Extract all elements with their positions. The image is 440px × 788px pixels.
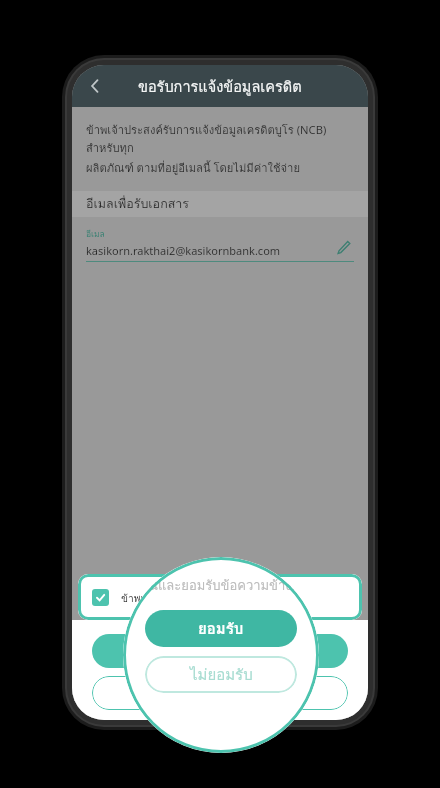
button[interactable]: Edit email xyxy=(332,236,354,258)
staticText: ไม่ยอมรับ xyxy=(194,683,247,703)
staticText: kasikorn.rakthai2@kasikornbank.com xyxy=(86,243,281,258)
button[interactable]: อีเมล xyxy=(86,227,354,258)
button[interactable]: ไม่ยอมรับ xyxy=(145,656,297,693)
button[interactable]: ยอมรับ xyxy=(92,634,348,668)
staticText: ยอมรับ xyxy=(198,617,244,641)
staticText: ข้าพเจ้าประสงค์รับการแจ้งข้อมูลเครดิตบูโ… xyxy=(86,121,354,157)
button[interactable]: ยอมรับ xyxy=(145,610,297,647)
staticText: ไม่ยอมรับ xyxy=(190,663,253,687)
button[interactable]: ข้าพเจ้าอ่านและยอมรับข้อความข้างต้น xyxy=(78,574,362,620)
staticText: อีเมล xyxy=(86,227,105,241)
button[interactable]: Back xyxy=(78,69,112,103)
button[interactable]: ไม่ยอมรับ xyxy=(92,676,348,710)
staticText: ขอรับการแจ้งข้อมูลเครดิต xyxy=(138,75,302,98)
staticText: ผลิตภัณฑ์ ตามที่อยู่อีเมลนี้ โดยไม่มีค่า… xyxy=(86,159,300,177)
staticText: ยอมรับ xyxy=(201,641,239,661)
staticText: อีเมลเพื่อรับเอกสาร xyxy=(86,194,190,214)
staticText: ข้าพเจ้าอ่านและยอมรับข้อความข้างต้น xyxy=(121,590,293,606)
staticText: อ่านและยอมรับข้อความข้างต้น xyxy=(134,575,309,596)
